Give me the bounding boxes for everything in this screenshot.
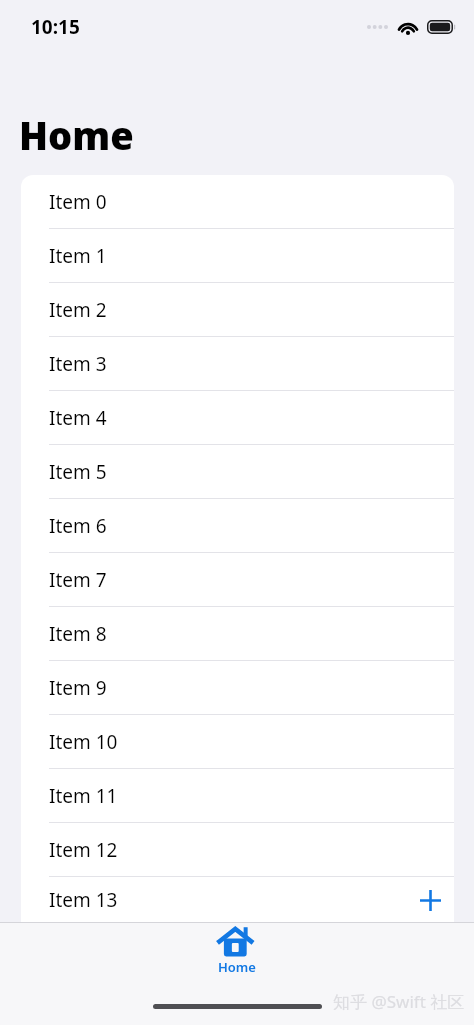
staticText: Item 6 — [49, 513, 107, 539]
button[interactable]: Item 3 — [21, 337, 454, 390]
staticText: Item 13 — [49, 887, 118, 913]
button[interactable]: Add item — [411, 881, 449, 919]
button[interactable]: Item 11 — [21, 769, 454, 822]
button[interactable]: Item 4 — [21, 391, 454, 444]
button[interactable]: Item 9 — [21, 661, 454, 714]
staticText: 知乎 @Swift 社区 — [333, 990, 465, 1013]
staticText: Home — [218, 958, 256, 976]
staticText: Item 11 — [49, 783, 118, 809]
button[interactable]: Item 0 — [21, 175, 454, 228]
staticText: 10:15 — [31, 14, 80, 40]
button[interactable]: Item 13 — [21, 877, 454, 922]
staticText: Item 7 — [49, 567, 107, 593]
button[interactable]: Item 6 — [21, 499, 454, 552]
button[interactable]: Item 10 — [21, 715, 454, 768]
staticText: Item 2 — [49, 297, 107, 323]
staticText: Item 8 — [49, 621, 107, 647]
button[interactable]: Item 5 — [21, 445, 454, 498]
staticText: Home — [19, 109, 134, 161]
staticText: Item 12 — [49, 837, 118, 863]
button[interactable]: Home — [196, 923, 278, 979]
button[interactable]: Item 12 — [21, 823, 454, 876]
staticText: Item 4 — [49, 405, 107, 431]
button[interactable]: Item 1 — [21, 229, 454, 282]
staticText: Item 5 — [49, 459, 107, 485]
button[interactable]: Item 7 — [21, 553, 454, 606]
button[interactable]: Item 8 — [21, 607, 454, 660]
staticText: Item 0 — [49, 189, 107, 215]
staticText: Item 1 — [49, 243, 107, 269]
staticText: Item 10 — [49, 729, 118, 755]
staticText: Item 9 — [49, 675, 107, 701]
button[interactable]: Item 2 — [21, 283, 454, 336]
staticText: Item 3 — [49, 351, 107, 377]
